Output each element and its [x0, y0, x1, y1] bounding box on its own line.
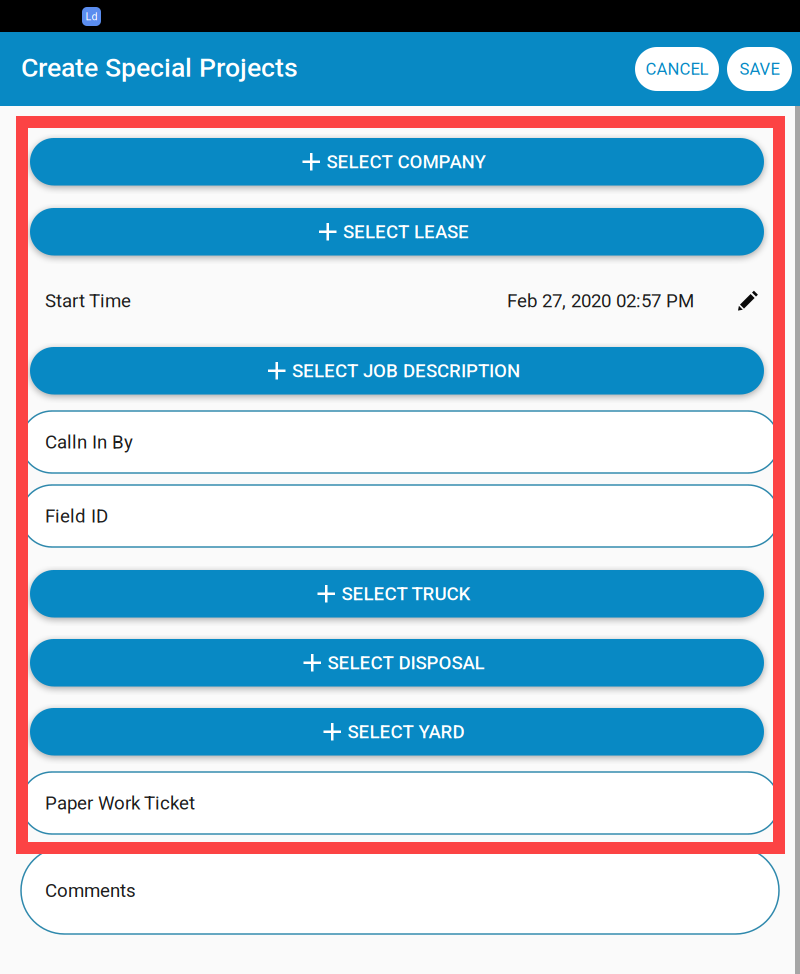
staticText: Calln In By: [45, 431, 133, 453]
staticText: Create Special Projects: [21, 52, 298, 83]
staticText: SELECT TRUCK: [341, 583, 470, 605]
staticText: Start Time: [45, 290, 131, 312]
staticText: Comments: [45, 880, 136, 901]
staticText: Feb 27, 2020 02:57 PM: [507, 290, 694, 312]
staticText: SELECT YARD: [347, 721, 464, 743]
button[interactable]: SELECT LEASE: [30, 208, 764, 255]
button[interactable]: Start Time: [21, 278, 779, 324]
staticText: Field ID: [45, 505, 108, 527]
staticText: Ld: [85, 10, 97, 23]
button[interactable]: SELECT YARD: [30, 708, 764, 755]
staticText: SELECT COMPANY: [326, 151, 485, 173]
button[interactable]: SELECT JOB DESCRIPTION: [30, 347, 764, 394]
staticText: SELECT JOB DESCRIPTION: [292, 360, 520, 382]
button[interactable]: SELECT TRUCK: [30, 570, 764, 617]
staticText: SELECT LEASE: [343, 221, 469, 243]
button[interactable]: CANCEL: [635, 47, 719, 91]
staticText: CANCEL: [645, 59, 708, 79]
button[interactable]: SELECT DISPOSAL: [30, 639, 764, 686]
button[interactable]: Calln In By: [21, 411, 779, 473]
button[interactable]: Paper Work Ticket: [21, 772, 779, 834]
button[interactable]: SELECT COMPANY: [30, 138, 764, 185]
button[interactable]: Comments: [21, 847, 779, 934]
button[interactable]: Field ID: [21, 485, 779, 547]
staticText: Paper Work Ticket: [45, 792, 195, 814]
button[interactable]: SAVE: [727, 47, 792, 91]
staticText: SELECT DISPOSAL: [327, 652, 484, 674]
staticText: SAVE: [739, 59, 779, 79]
